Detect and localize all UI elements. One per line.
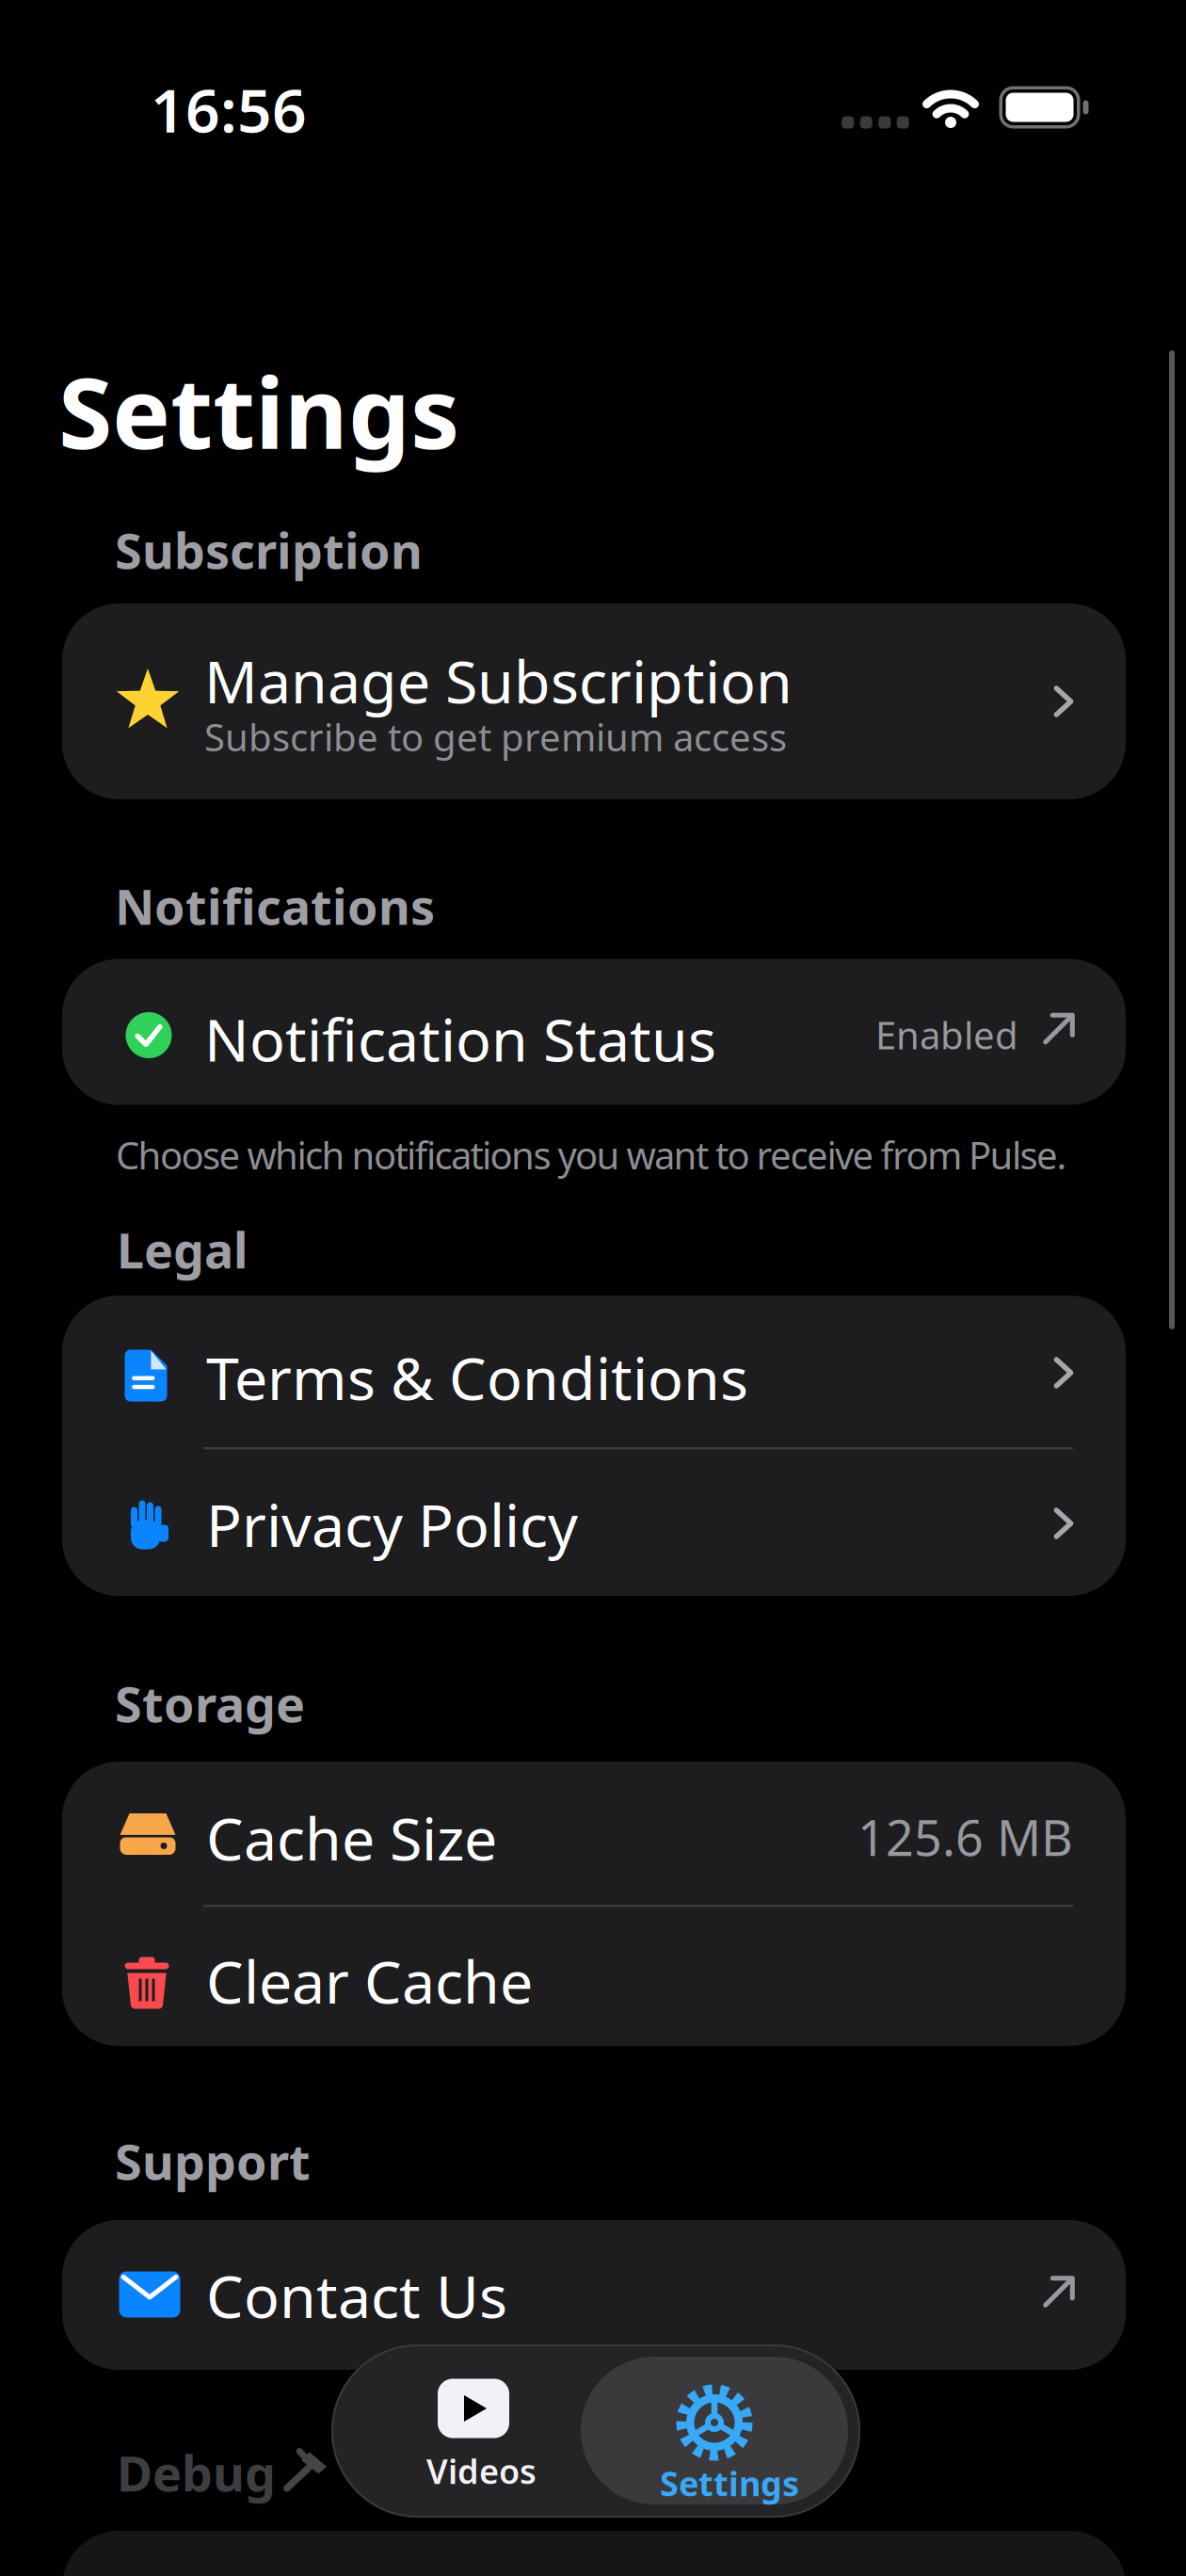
staticText: Debug: [117, 2440, 276, 2505]
staticText: Notification Status: [204, 1000, 716, 1078]
staticText: Subscription: [115, 517, 423, 583]
button[interactable]: Terms & Conditions: [62, 1296, 1126, 1447]
staticText: Subscribe to get premium access: [204, 712, 787, 762]
button[interactable]: Clear Cache: [62, 1907, 1126, 2048]
staticText: Cache Size: [206, 1798, 497, 1877]
staticText: 125.6 MB: [857, 1805, 1073, 1870]
staticText: Settings: [58, 346, 459, 476]
staticText: Videos: [426, 2448, 537, 2493]
button[interactable]: Notification Status: [62, 959, 1126, 1105]
staticText: Contact Us: [206, 2256, 507, 2334]
staticText: Enabled: [875, 1010, 1018, 1060]
staticText: Terms & Conditions: [206, 1338, 748, 1416]
button[interactable]: Settings: [581, 2357, 848, 2504]
button[interactable]: Manage Subscription: [62, 604, 1126, 799]
staticText: Settings: [660, 2460, 799, 2505]
button[interactable]: Videos: [350, 2344, 597, 2518]
staticText: Notifications: [115, 873, 435, 938]
staticText: Storage: [115, 1671, 305, 1736]
staticText: 16:56: [151, 69, 307, 149]
staticText: Privacy Policy: [206, 1485, 578, 1563]
staticText: Legal: [117, 1217, 248, 1282]
staticText: Support: [115, 2128, 311, 2193]
button[interactable]: Privacy Policy: [62, 1449, 1126, 1598]
staticText: Manage Subscription: [204, 641, 793, 720]
staticText: Choose which notifications you want to r…: [116, 1130, 1067, 1180]
staticText: Clear Cache: [206, 1942, 533, 2020]
button[interactable]: Contact Us: [62, 2220, 1126, 2370]
